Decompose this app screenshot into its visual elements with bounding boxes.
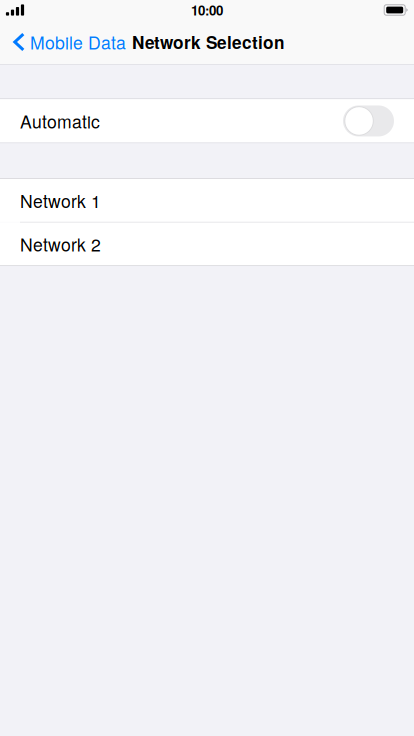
button[interactable]: Mobile Data (0, 23, 133, 61)
staticText: Network 1 (20, 188, 101, 213)
button[interactable]: Automatic (0, 99, 414, 143)
staticText: Network 2 (20, 231, 101, 257)
staticText: 10:00 (191, 0, 223, 20)
staticText: Network Selection (132, 30, 285, 54)
staticText: Mobile Data (30, 29, 126, 55)
staticText: Automatic (20, 108, 100, 133)
button[interactable]: Network 2 (0, 222, 414, 265)
button[interactable]: Network 1 (0, 179, 414, 222)
